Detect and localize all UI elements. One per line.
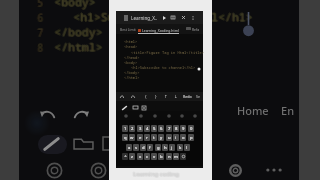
button[interactable]: Best Limit: [118, 24, 138, 34]
button[interactable]: }: [152, 93, 159, 100]
button[interactable]: GIF: [165, 112, 172, 119]
button[interactable]: n: [166, 153, 172, 160]
staticText: d: [142, 145, 145, 151]
button[interactable]: Edit: [120, 104, 129, 111]
button[interactable]: Close: [179, 14, 187, 21]
staticText: <body>: [55, 0, 97, 11]
staticText: <h1>Su: [72, 9, 114, 25]
staticText: </body>: [55, 24, 104, 40]
button[interactable]: 5: [151, 125, 157, 132]
staticText: <h1>Su: [74, 9, 116, 25]
staticText: 7: [37, 26, 43, 40]
button[interactable]: 8: [173, 125, 179, 132]
button[interactable]: r: [144, 134, 150, 141]
staticText: u: [168, 135, 171, 141]
button[interactable]: 4: [144, 125, 150, 132]
staticText: l</h1>: [210, 9, 252, 25]
staticText: 6: [37, 10, 43, 24]
staticText: <head>: [124, 44, 138, 49]
staticText: 6: [36, 11, 42, 25]
staticText: 9: [182, 126, 185, 132]
button[interactable]: z: [129, 153, 135, 160]
button[interactable]: 9: [180, 125, 186, 132]
staticText: Learning_X..: [131, 15, 158, 21]
button[interactable]: Search: [122, 112, 129, 119]
button[interactable]: More: [191, 112, 198, 119]
staticText: <body>: [55, 0, 97, 10]
button[interactable]: k: [177, 144, 183, 151]
staticText: 2: [131, 126, 134, 132]
staticText: 7: [38, 25, 44, 39]
button[interactable]: 6: [158, 125, 164, 132]
button[interactable]: 1: [122, 125, 128, 132]
staticText: 6: [38, 11, 44, 25]
staticText: Se: [196, 94, 200, 99]
button[interactable]: l: [184, 144, 190, 151]
staticText: 8: [36, 41, 42, 55]
button[interactable]: {: [142, 93, 149, 100]
button[interactable]: Redo: [182, 93, 192, 100]
button[interactable]: Shift: [122, 153, 128, 160]
button[interactable]: s: [133, 144, 139, 151]
button[interactable]: Backspace: [180, 153, 186, 160]
staticText: 8: [37, 41, 43, 55]
staticText: <body>: [54, 0, 96, 10]
button[interactable]: 2: [129, 125, 135, 132]
button[interactable]: b: [158, 153, 164, 160]
button[interactable]: a: [126, 144, 132, 151]
staticText: a: [128, 145, 131, 151]
button[interactable]: q: [122, 134, 128, 141]
button[interactable]: g: [155, 144, 161, 151]
staticText: </html>: [54, 39, 103, 55]
staticText: </body>: [54, 25, 103, 41]
button[interactable]: o: [180, 134, 186, 141]
button[interactable]: Emoji: [178, 112, 185, 119]
button[interactable]: t: [151, 134, 157, 141]
staticText: h: [164, 145, 167, 151]
button[interactable]: v: [151, 153, 157, 160]
staticText: 7: [168, 126, 171, 132]
button[interactable]: Preview mode: [186, 27, 191, 30]
button[interactable]: ↓: [172, 93, 179, 100]
staticText: 5: [37, 0, 43, 9]
button[interactable]: i: [173, 134, 179, 141]
staticText: </html>: [54, 40, 103, 56]
button[interactable]: Stickers: [137, 112, 144, 119]
button[interactable]: y: [158, 134, 164, 141]
button[interactable]: c: [144, 153, 150, 160]
staticText: 6: [160, 126, 163, 132]
button[interactable]: m: [173, 153, 179, 160]
button[interactable]: More options: [189, 14, 197, 21]
button[interactable]: 3: [137, 125, 143, 132]
button[interactable]: 0: [188, 125, 194, 132]
staticText: 3: [139, 126, 142, 132]
staticText: 5: [153, 126, 156, 132]
button[interactable]: Undo: [118, 93, 126, 100]
staticText: <h1>Su: [73, 9, 115, 25]
staticText: Learning coding: [133, 170, 179, 178]
button[interactable]: Se: [194, 93, 201, 100]
button[interactable]: w: [129, 134, 135, 141]
button[interactable]: ↑: [162, 93, 169, 100]
button[interactable]: x: [137, 153, 143, 160]
button[interactable]: Select region: [131, 104, 139, 111]
staticText: </head>: [124, 55, 140, 60]
button[interactable]: e: [137, 134, 143, 141]
button[interactable]: h: [162, 144, 168, 151]
button[interactable]: Menu: [121, 14, 130, 21]
button[interactable]: Layout: [140, 104, 148, 111]
button[interactable]: Redo: [129, 93, 137, 100]
button[interactable]: Clipboard: [151, 112, 158, 119]
button[interactable]: Run: [160, 14, 168, 21]
button[interactable]: d: [140, 144, 146, 151]
staticText: Best Limit: [120, 27, 136, 32]
button[interactable]: f: [147, 144, 153, 151]
button[interactable]: Learning_Xcoding.html: [138, 27, 179, 33]
button[interactable]: Split view: [169, 14, 177, 21]
staticText: <body>: [54, 0, 96, 10]
staticText: 8: [37, 40, 43, 54]
button[interactable]: u: [166, 134, 172, 141]
button[interactable]: 7: [166, 125, 172, 132]
button[interactable]: j: [169, 144, 175, 151]
button[interactable]: p: [188, 134, 194, 141]
